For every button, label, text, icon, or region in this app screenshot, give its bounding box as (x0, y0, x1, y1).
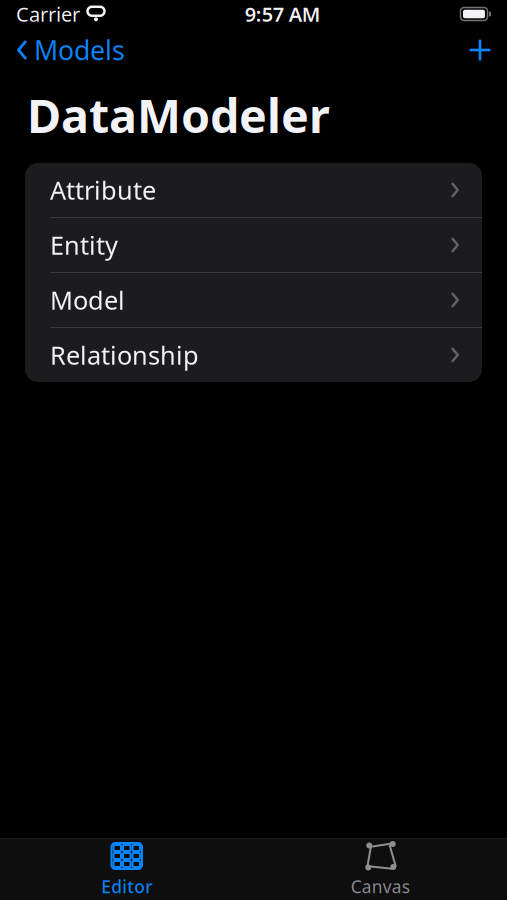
staticText: Carrier (16, 1, 80, 27)
staticText: 9:57 AM (245, 1, 321, 27)
button[interactable]: Model (25, 273, 482, 328)
button[interactable]: Entity (25, 218, 482, 273)
button[interactable]: Editor (0, 839, 253, 900)
staticText: Relationship (50, 338, 199, 372)
staticText: Models (34, 32, 125, 68)
staticText: Editor (101, 875, 152, 898)
staticText: Canvas (351, 875, 410, 898)
staticText: Model (50, 283, 125, 317)
button[interactable]: Relationship (25, 328, 482, 382)
button[interactable]: Canvas (253, 839, 507, 900)
staticText: Attribute (50, 173, 156, 207)
staticText: DataModeler (27, 84, 330, 146)
button[interactable]: Models (0, 28, 141, 72)
button[interactable]: Attribute (25, 163, 482, 218)
button[interactable]: Add (453, 28, 507, 72)
staticText: Entity (50, 228, 118, 262)
